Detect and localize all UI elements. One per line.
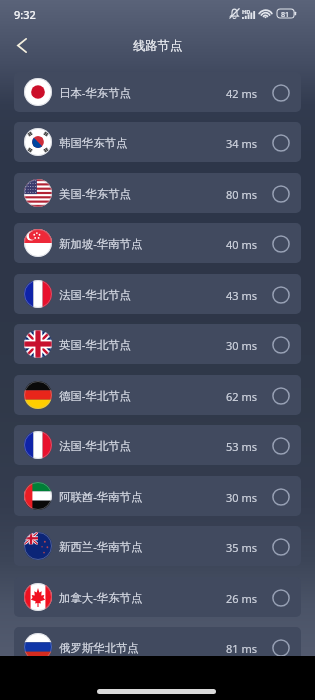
button[interactable]: 美国-华东节点 bbox=[14, 173, 301, 213]
staticText: 53 ms bbox=[226, 439, 257, 454]
button[interactable]: 法国-华北节点 bbox=[14, 274, 301, 314]
button[interactable]: 新加坡-华南节点 bbox=[14, 223, 301, 263]
staticText: 俄罗斯华北节点 bbox=[59, 641, 139, 655]
button[interactable]: 加拿大-华东节点 bbox=[14, 577, 301, 617]
button[interactable]: 日本-华东节点 bbox=[14, 72, 301, 112]
staticText: 英国-华北节点 bbox=[59, 337, 132, 353]
button[interactable]: 新西兰-华南节点 bbox=[14, 526, 301, 566]
staticText: 德国-华北节点 bbox=[59, 388, 132, 404]
staticText: 阿联酋-华南节点 bbox=[59, 489, 143, 505]
staticText: 62 ms bbox=[226, 389, 257, 404]
staticText: 34 ms bbox=[226, 136, 257, 151]
staticText: 加拿大-华东节点 bbox=[59, 590, 143, 606]
staticText: 81 ms bbox=[226, 641, 257, 656]
button[interactable]: 韩国华东节点 bbox=[14, 122, 301, 162]
staticText: 43 ms bbox=[226, 288, 257, 303]
staticText: 26 ms bbox=[226, 591, 257, 606]
button[interactable]: 德国-华北节点 bbox=[14, 375, 301, 415]
button[interactable]: 俄罗斯华北节点 bbox=[14, 627, 301, 667]
button[interactable]: 英国-华北节点 bbox=[14, 324, 301, 364]
staticText: 40 ms bbox=[226, 237, 257, 252]
staticText: 30 ms bbox=[226, 338, 257, 353]
staticText: 42 ms bbox=[226, 86, 257, 101]
staticText: 81 bbox=[281, 9, 290, 19]
staticText: HD bbox=[242, 8, 251, 16]
staticText: 35 ms bbox=[226, 540, 257, 555]
staticText: 30 ms bbox=[226, 490, 257, 505]
staticText: 日本-华东节点 bbox=[59, 85, 132, 101]
staticText: 线路节点 bbox=[133, 38, 183, 53]
staticText: 80 ms bbox=[226, 187, 257, 202]
staticText: 法国-华北节点 bbox=[59, 438, 132, 454]
button[interactable]: 法国-华北节点 bbox=[14, 425, 301, 465]
staticText: 美国-华东节点 bbox=[59, 186, 132, 202]
button[interactable]: 阿联酋-华南节点 bbox=[14, 476, 301, 516]
staticText: 法国-华北节点 bbox=[59, 287, 132, 303]
staticText: 韩国华东节点 bbox=[59, 136, 128, 150]
staticText: 新西兰-华南节点 bbox=[59, 539, 143, 555]
button[interactable]: Back bbox=[8, 28, 36, 62]
staticText: 9:32 bbox=[14, 7, 36, 22]
staticText: 新加坡-华南节点 bbox=[59, 236, 143, 252]
